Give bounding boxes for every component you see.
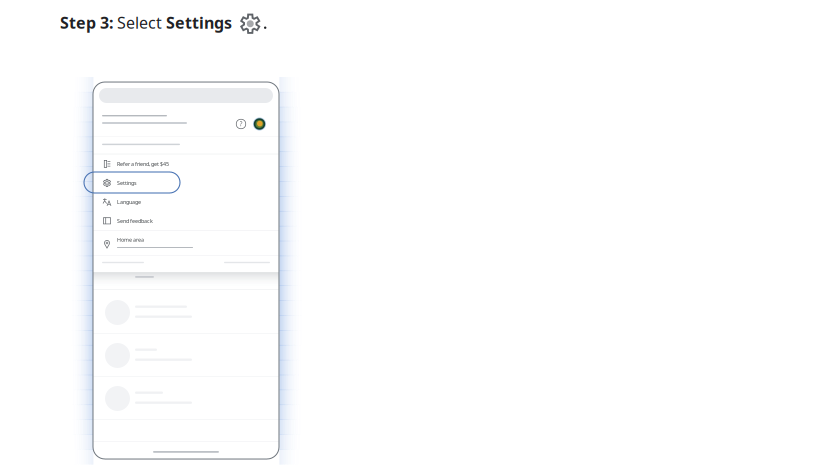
button[interactable]: Language bbox=[93, 192, 279, 211]
button[interactable]: Home area bbox=[93, 231, 279, 255]
button[interactable]: Refer a friend, get $45 bbox=[93, 154, 279, 173]
staticText: Settings bbox=[117, 179, 137, 186]
staticText: Refer a friend, get $45 bbox=[117, 160, 169, 167]
button[interactable]: Settings bbox=[93, 173, 279, 192]
staticText: Home area bbox=[117, 236, 144, 243]
button[interactable]: List item 3 bbox=[93, 377, 279, 420]
button[interactable]: List item 1 bbox=[93, 291, 279, 334]
staticText: Send feedback bbox=[117, 217, 153, 224]
button[interactable]: Send feedback bbox=[93, 211, 279, 230]
staticText: ? bbox=[239, 119, 242, 128]
button[interactable]: Help bbox=[234, 117, 247, 130]
staticText: Language bbox=[117, 198, 141, 205]
button[interactable]: Account bbox=[253, 117, 266, 130]
staticText: Settings bbox=[166, 12, 232, 33]
staticText: Select bbox=[113, 12, 166, 33]
staticText: Step 3: bbox=[60, 12, 113, 33]
button[interactable]: List item 2 bbox=[93, 334, 279, 377]
